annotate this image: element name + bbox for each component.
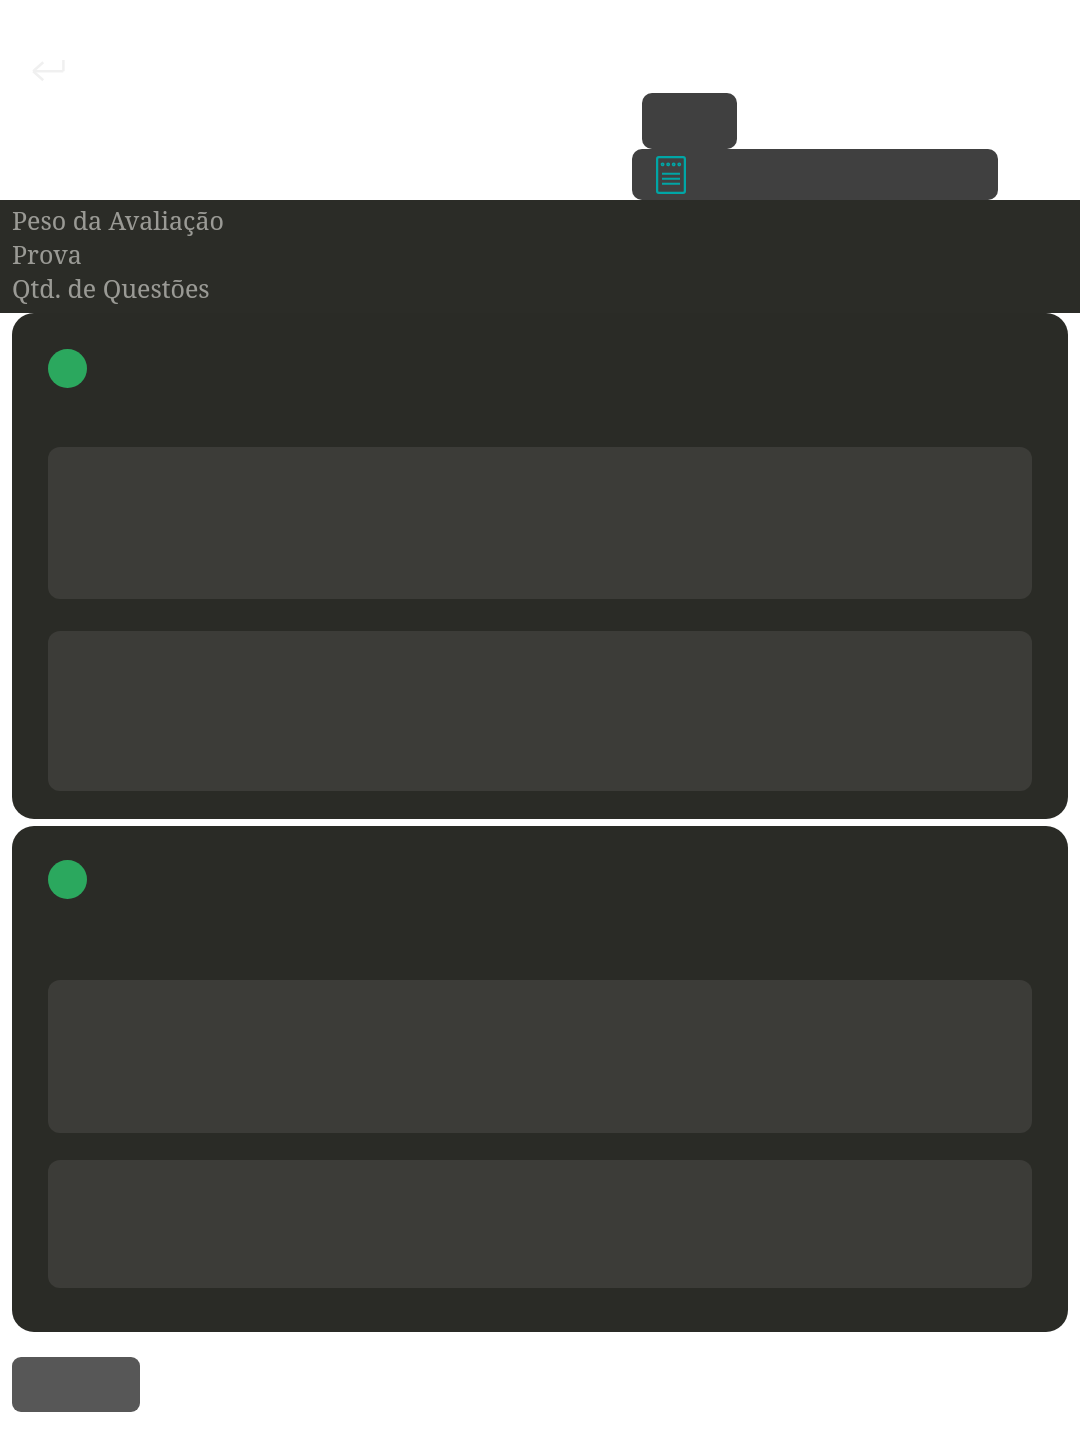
staticText: Qtd. de Questões	[12, 271, 210, 305]
button[interactable]: Action	[12, 1357, 140, 1412]
button[interactable]	[632, 149, 998, 200]
button[interactable]	[12, 313, 1068, 819]
button[interactable]: Back	[22, 46, 76, 100]
staticText: Prova	[12, 237, 82, 271]
staticText: Peso da Avaliação	[12, 203, 224, 237]
button[interactable]: Tab	[642, 93, 737, 149]
button[interactable]	[12, 826, 1068, 1332]
